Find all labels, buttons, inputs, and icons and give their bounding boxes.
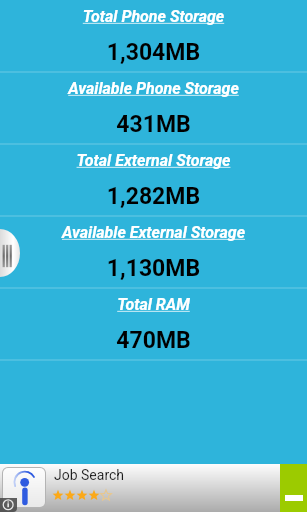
staticText: 431MB xyxy=(0,111,307,138)
button[interactable]: Available External Storage xyxy=(0,216,307,288)
button[interactable]: Ad information xyxy=(0,498,17,512)
button[interactable]: Available Phone Storage xyxy=(0,72,307,144)
button[interactable]: Install xyxy=(280,464,307,512)
button[interactable]: Open drawer xyxy=(0,229,20,277)
staticText: 1,304MB xyxy=(0,39,307,66)
staticText: Total Phone Storage xyxy=(0,7,307,26)
staticText: 1,130MB xyxy=(0,255,307,282)
staticText: Job Search xyxy=(54,467,125,483)
staticText: Total External Storage xyxy=(0,151,307,170)
staticText: 1,282MB xyxy=(0,183,307,210)
button[interactable]: Total RAM xyxy=(0,288,307,360)
button[interactable]: Total External Storage xyxy=(0,144,307,216)
staticText: 470MB xyxy=(0,327,307,354)
staticText: Available External Storage xyxy=(0,223,307,242)
button[interactable]: Total Phone Storage xyxy=(0,0,307,72)
staticText: Available Phone Storage xyxy=(0,79,307,98)
staticText: Total RAM xyxy=(0,295,307,314)
